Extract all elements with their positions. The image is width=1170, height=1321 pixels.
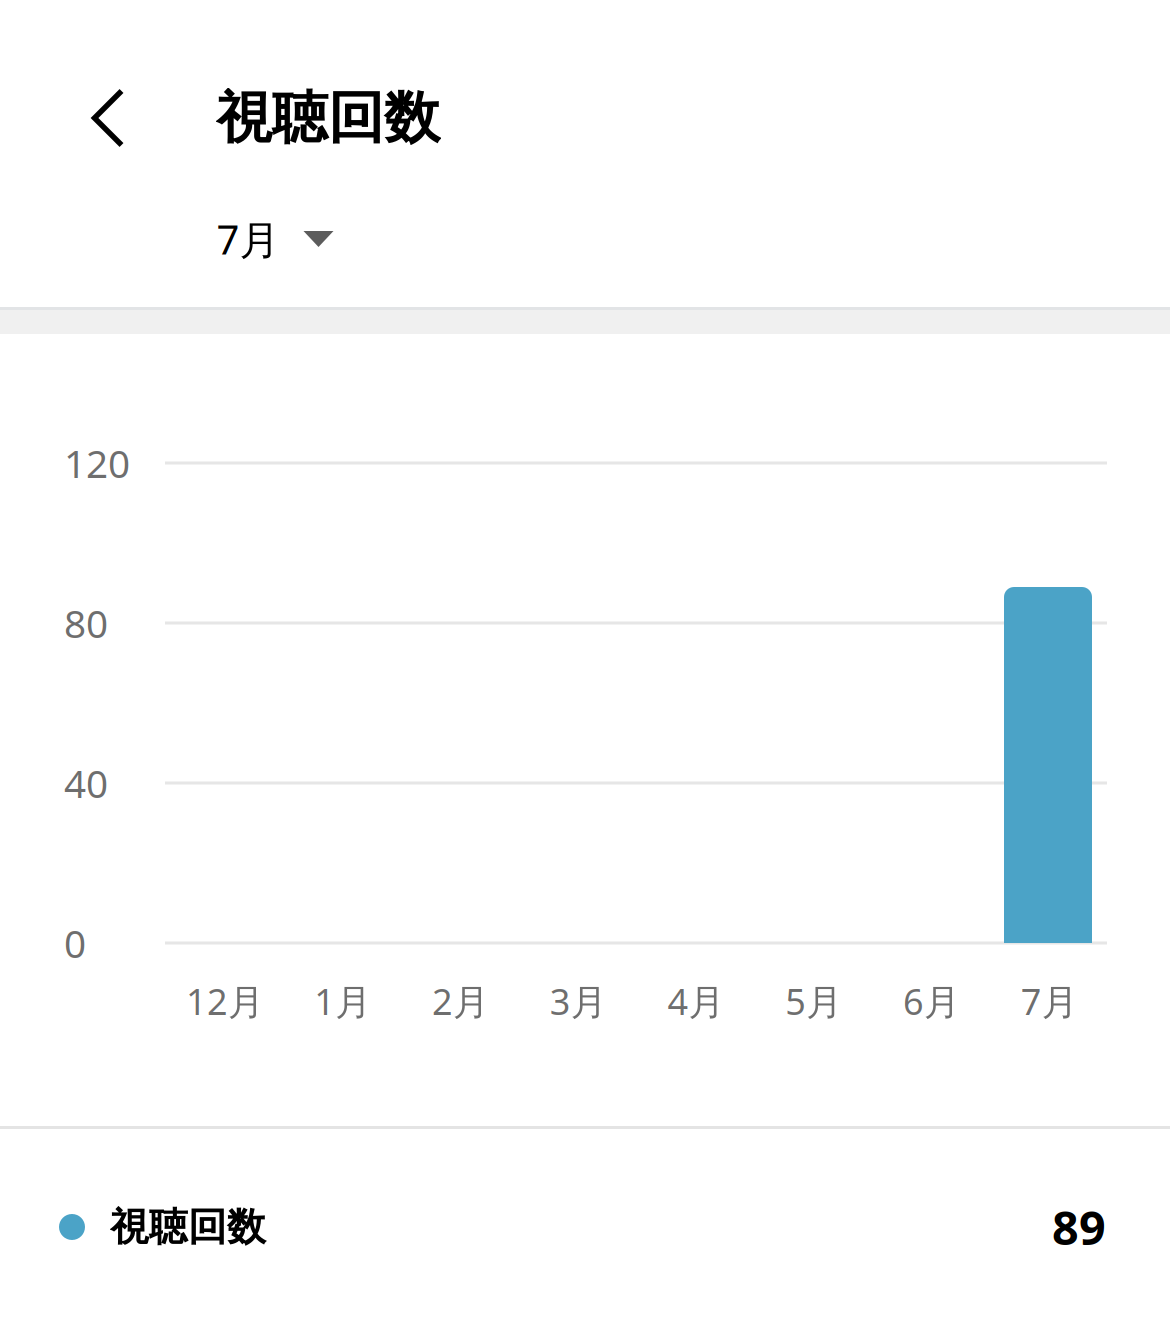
button[interactable]: 7月 — [206, 194, 351, 283]
button[interactable]: Back — [48, 58, 168, 178]
staticText: 120 — [64, 437, 130, 489]
staticText: 7月 — [1021, 977, 1078, 1025]
staticText: 視聴回数 — [216, 84, 440, 152]
staticText: 6月 — [903, 977, 960, 1025]
staticText: 3月 — [550, 977, 607, 1025]
staticText: 2月 — [432, 977, 489, 1025]
staticText: 12月 — [186, 977, 264, 1025]
button[interactable]: 視聴回数 — [0, 1132, 1170, 1321]
staticText: 89 — [1052, 1196, 1106, 1258]
staticText: 7月 — [216, 212, 279, 265]
staticText: 1月 — [314, 977, 371, 1025]
staticText: 視聴回数 — [110, 1203, 266, 1251]
staticText: 4月 — [667, 977, 724, 1025]
staticText: 0 — [64, 917, 86, 969]
staticText: 5月 — [785, 977, 842, 1025]
staticText: 80 — [64, 597, 108, 649]
staticText: 40 — [64, 757, 108, 809]
